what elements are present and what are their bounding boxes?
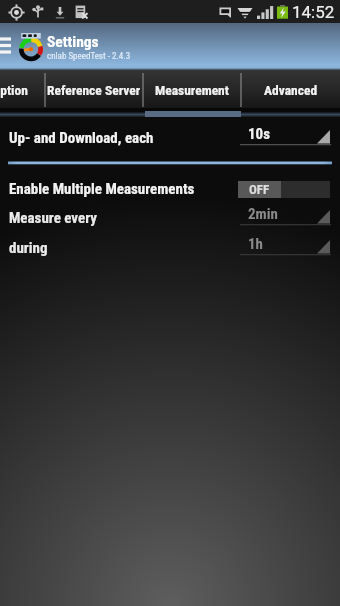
staticText: 2min xyxy=(248,205,278,223)
staticText: Reference Server xyxy=(47,82,141,98)
staticText: 14:52 xyxy=(292,2,335,22)
button[interactable]: Enable Multiple Measurements xyxy=(0,174,340,204)
staticText: Measurement xyxy=(155,82,229,98)
button[interactable]: Up- and Download, each xyxy=(0,123,340,153)
button[interactable]: Description xyxy=(0,70,45,110)
button[interactable]: Open navigation menu xyxy=(0,23,15,68)
staticText: OFF xyxy=(249,182,270,197)
button[interactable]: Measure every xyxy=(0,203,340,233)
staticText: 1h xyxy=(248,235,263,253)
button[interactable]: Advanced xyxy=(241,70,340,110)
button[interactable]: during xyxy=(0,233,340,263)
staticText: during xyxy=(9,239,48,257)
staticText: Advanced xyxy=(264,82,318,98)
staticText: Measure every xyxy=(9,209,97,227)
button[interactable]: Reference Server xyxy=(45,70,143,110)
staticText: 10s xyxy=(248,125,270,143)
staticText: Up- and Download, each xyxy=(9,129,154,147)
staticText: Enable Multiple Measurements xyxy=(9,180,195,198)
staticText: Settings xyxy=(47,33,99,51)
button[interactable]: Measurement xyxy=(143,70,241,110)
staticText: cnlab SpeedTest - 2.4.3 xyxy=(47,51,131,62)
staticText: Description xyxy=(0,82,28,98)
